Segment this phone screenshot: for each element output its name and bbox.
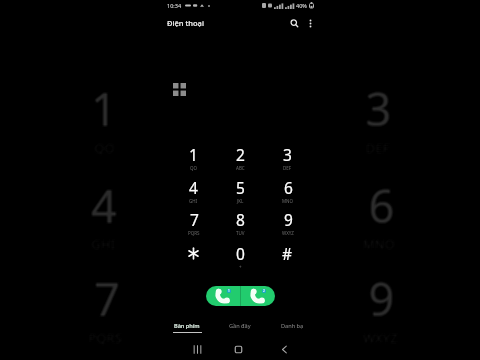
- button[interactable]: 3: [309, 77, 446, 167]
- button[interactable]: 3: [310, 77, 447, 167]
- button[interactable]: 3: [310, 76, 447, 166]
- button[interactable]: 8: [174, 266, 311, 356]
- button[interactable]: 8: [173, 267, 310, 357]
- button[interactable]: 4: [36, 174, 173, 265]
- button[interactable]: 7: [36, 266, 173, 356]
- button[interactable]: 2: [217, 144, 264, 175]
- button[interactable]: 9: [264, 209, 311, 240]
- button[interactable]: 4: [35, 173, 172, 264]
- button[interactable]: 9: [311, 266, 448, 356]
- button[interactable]: 4: [170, 177, 217, 208]
- button[interactable]: 1: [36, 78, 173, 168]
- button[interactable]: 7: [35, 268, 172, 358]
- button[interactable]: 2: [173, 78, 310, 168]
- button[interactable]: 4: [36, 173, 173, 264]
- button[interactable]: 1: [170, 144, 217, 175]
- button[interactable]: 8: [217, 209, 264, 240]
- button[interactable]: 1: [35, 78, 172, 168]
- button[interactable]: 9: [310, 268, 447, 358]
- button[interactable]: Bàn phím: [161, 315, 213, 334]
- button[interactable]: 6: [310, 172, 447, 263]
- button[interactable]: 6: [311, 174, 448, 265]
- button[interactable]: 7: [35, 267, 172, 357]
- button[interactable]: 4: [37, 172, 174, 263]
- button[interactable]: 2: [174, 77, 311, 167]
- button[interactable]: 5: [173, 174, 310, 265]
- button[interactable]: 6: [309, 174, 446, 265]
- button[interactable]: 4: [35, 174, 172, 265]
- button[interactable]: 6: [264, 177, 311, 208]
- button[interactable]: 7: [37, 266, 174, 356]
- button[interactable]: 8: [173, 268, 310, 358]
- button[interactable]: Gần đây: [213, 315, 266, 334]
- button[interactable]: 2: [174, 78, 311, 168]
- button[interactable]: 1: [35, 76, 172, 166]
- button[interactable]: 5: [174, 172, 311, 263]
- button[interactable]: 3: [310, 78, 447, 168]
- button[interactable]: 9: [309, 266, 446, 356]
- button[interactable]: 7: [35, 266, 172, 356]
- button[interactable]: 2: [173, 76, 310, 166]
- button[interactable]: 5: [174, 173, 311, 264]
- button[interactable]: 5: [217, 177, 264, 208]
- button[interactable]: 1: [36, 76, 173, 166]
- button[interactable]: 8: [174, 267, 311, 357]
- button[interactable]: 9: [310, 267, 447, 357]
- button[interactable]: 7: [37, 268, 174, 358]
- button[interactable]: 4: [36, 172, 173, 263]
- button[interactable]: 3: [311, 78, 448, 168]
- button[interactable]: #: [264, 243, 311, 274]
- button[interactable]: 2: [174, 76, 311, 166]
- button[interactable]: Call with SIM 2: [240, 286, 275, 306]
- button[interactable]: 7: [36, 268, 173, 358]
- button[interactable]: 9: [309, 268, 446, 358]
- button[interactable]: 7: [37, 267, 174, 357]
- button[interactable]: 1: [37, 77, 174, 167]
- button[interactable]: 6: [311, 173, 448, 264]
- button[interactable]: 8: [172, 267, 309, 357]
- button[interactable]: Keypad options: [169, 79, 189, 99]
- button[interactable]: Call with SIM 1: [206, 286, 240, 306]
- button[interactable]: 8: [174, 268, 311, 358]
- button[interactable]: 4: [37, 174, 174, 265]
- button[interactable]: Điện thoại: [166, 18, 205, 28]
- button[interactable]: 5: [174, 174, 311, 265]
- button[interactable]: 5: [172, 174, 309, 265]
- button[interactable]: Back: [271, 339, 297, 360]
- button[interactable]: 5: [173, 172, 310, 263]
- button[interactable]: 3: [311, 76, 448, 166]
- button[interactable]: 3: [264, 144, 311, 175]
- button[interactable]: Recent apps: [184, 339, 210, 360]
- button[interactable]: More options: [303, 16, 318, 31]
- button[interactable]: 6: [309, 173, 446, 264]
- button[interactable]: 2: [172, 77, 309, 167]
- button[interactable]: 4: [35, 172, 172, 263]
- button[interactable]: 7: [170, 209, 217, 240]
- button[interactable]: 9: [309, 267, 446, 357]
- button[interactable]: 7: [36, 267, 173, 357]
- button[interactable]: 5: [173, 173, 310, 264]
- button[interactable]: 3: [309, 78, 446, 168]
- button[interactable]: [170, 243, 217, 274]
- button[interactable]: 3: [311, 77, 448, 167]
- button[interactable]: 6: [310, 173, 447, 264]
- button[interactable]: 9: [311, 268, 448, 358]
- button[interactable]: 6: [311, 172, 448, 263]
- button[interactable]: 2: [172, 78, 309, 168]
- button[interactable]: 8: [172, 268, 309, 358]
- button[interactable]: Search: [286, 15, 303, 32]
- button[interactable]: 8: [172, 266, 309, 356]
- button[interactable]: 5: [172, 173, 309, 264]
- button[interactable]: 1: [37, 76, 174, 166]
- button[interactable]: Danh bạ: [266, 315, 319, 334]
- button[interactable]: Home: [225, 339, 251, 360]
- button[interactable]: 8: [173, 266, 310, 356]
- button[interactable]: 5: [172, 172, 309, 263]
- button[interactable]: 6: [309, 172, 446, 263]
- button[interactable]: 9: [311, 267, 448, 357]
- button[interactable]: 0: [217, 243, 264, 274]
- button[interactable]: 6: [310, 174, 447, 265]
- button[interactable]: 9: [310, 266, 447, 356]
- button[interactable]: 3: [309, 76, 446, 166]
- button[interactable]: 4: [37, 173, 174, 264]
